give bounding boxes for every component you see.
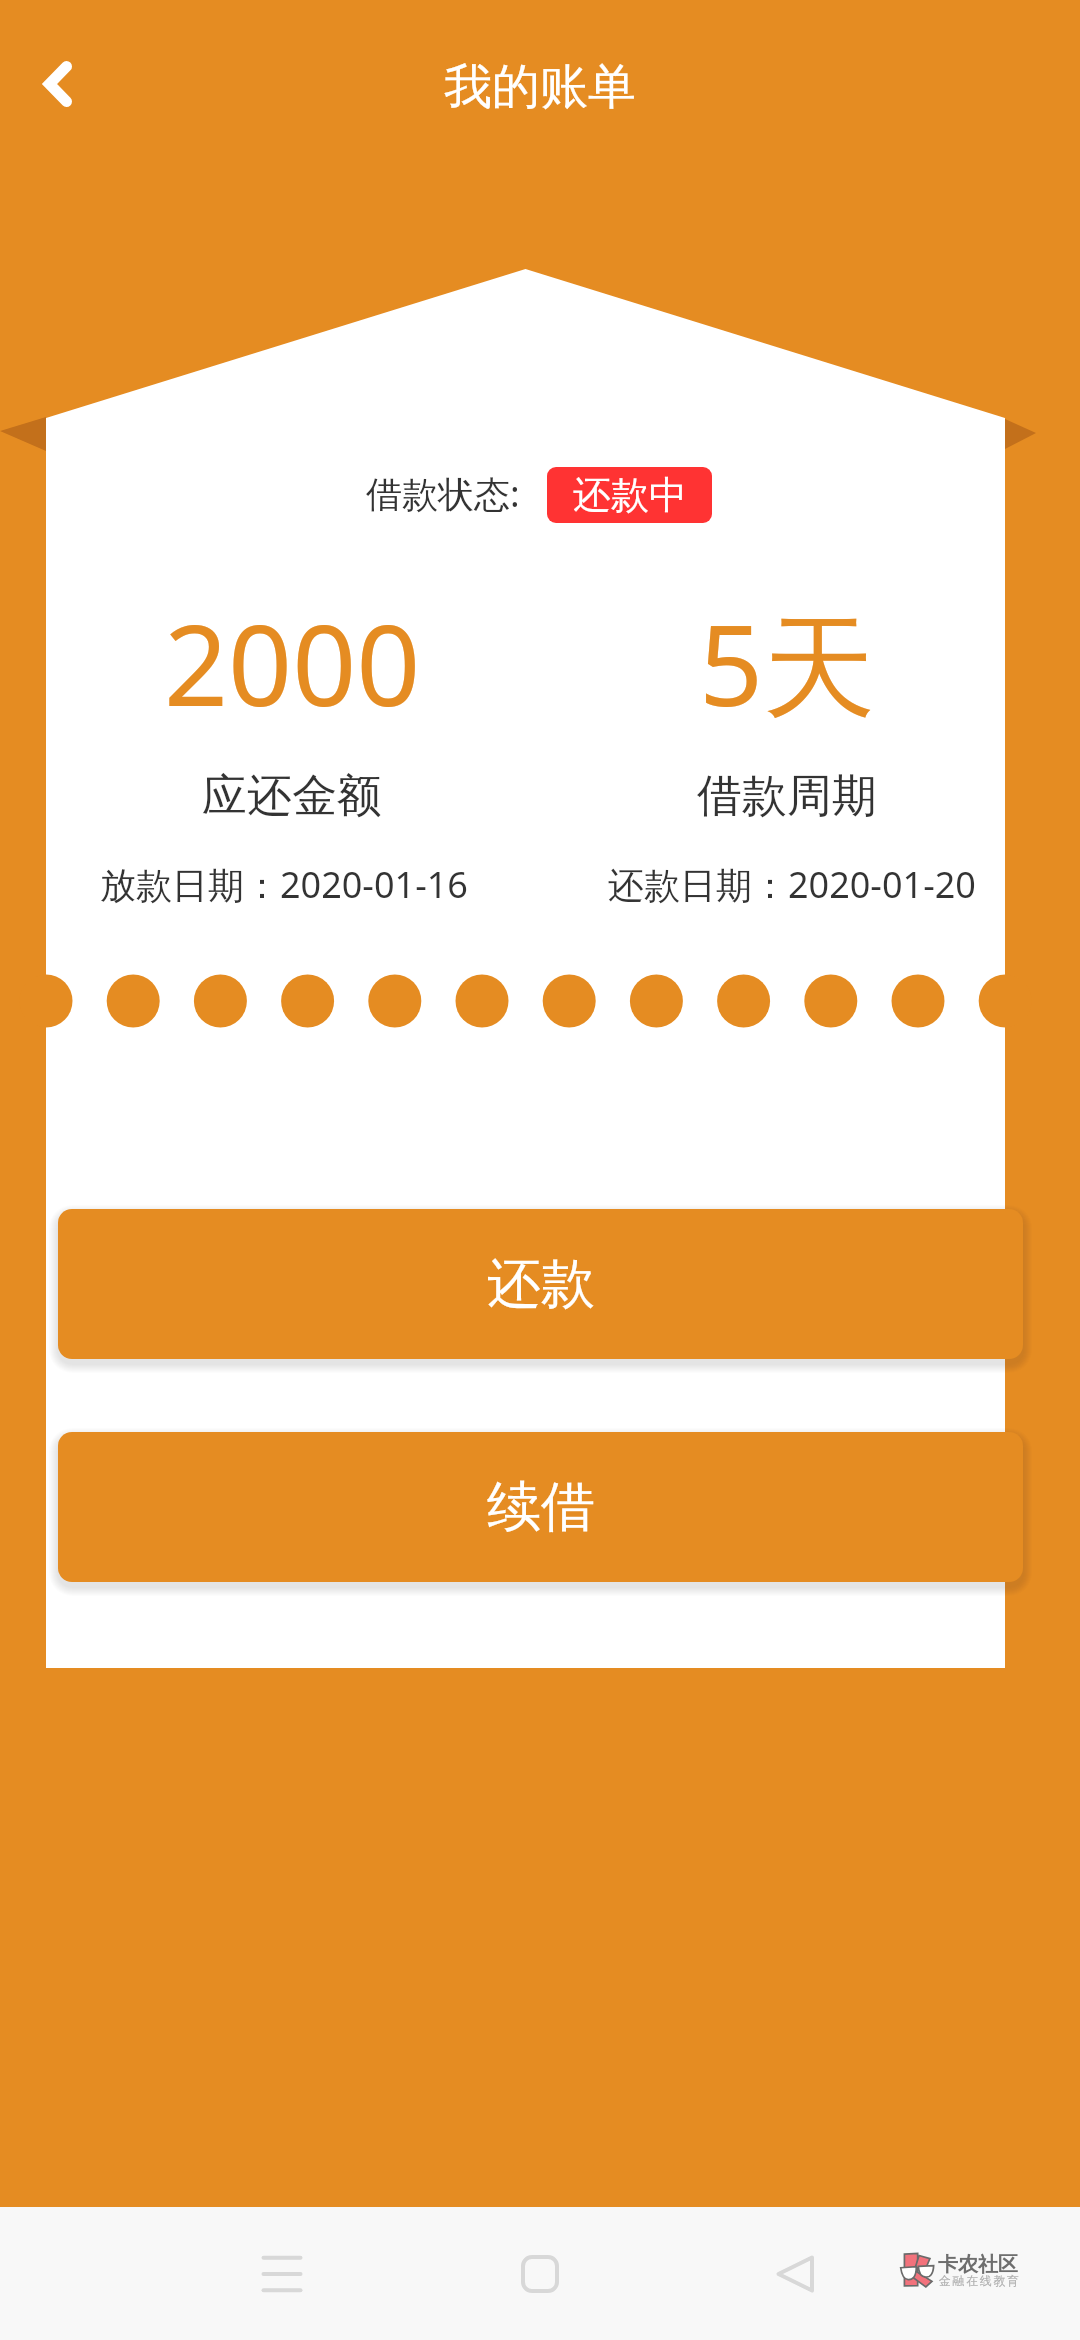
button[interactable]: Home [485, 2207, 595, 2340]
button[interactable]: 续借 [58, 1432, 1023, 1582]
button[interactable]: Menu [227, 2207, 337, 2340]
button[interactable]: Back [740, 2207, 850, 2340]
staticText: 还款中 [573, 471, 687, 519]
button[interactable]: Back [10, 36, 106, 132]
button[interactable]: 还款中 [547, 467, 712, 523]
staticText: 借款周期 [697, 768, 877, 825]
staticText: 应还金额 [202, 768, 382, 825]
other: 卡农社区 [900, 2252, 934, 2287]
staticText: 5天 [699, 586, 876, 739]
staticText: 卡农社区 [938, 2252, 1018, 2277]
staticText: 还款日期：2020-01-20 [608, 860, 976, 909]
staticText: 我的账单 [0, 57, 1080, 117]
staticText: 借款状态: [366, 469, 520, 518]
staticText: 续借 [487, 1473, 595, 1541]
staticText: 还款 [487, 1250, 595, 1318]
staticText: 2000 [164, 586, 421, 739]
staticText: 放款日期：2020-01-16 [100, 860, 468, 909]
staticText: 金融在线教育 [939, 2273, 1021, 2288]
button[interactable]: 还款 [58, 1209, 1023, 1359]
